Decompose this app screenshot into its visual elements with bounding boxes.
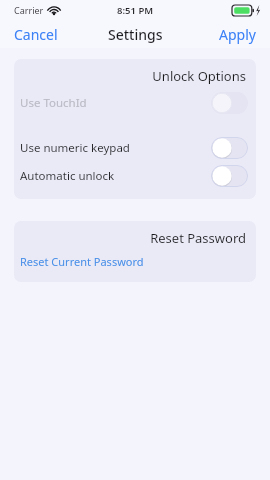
- button[interactable]: Toggle: [211, 137, 248, 159]
- staticText: Settings: [108, 25, 163, 44]
- button[interactable]: Use numeric keypad: [14, 134, 256, 162]
- staticText: Cancel: [14, 25, 58, 44]
- button[interactable]: Automatic unlock: [14, 162, 256, 190]
- staticText: Apply: [219, 25, 256, 44]
- button[interactable]: Toggle: [211, 92, 248, 114]
- button[interactable]: Use TouchId: [14, 89, 256, 117]
- staticText: Automatic unlock: [20, 168, 211, 184]
- button[interactable]: Cancel: [0, 21, 72, 48]
- staticText: Reset Current Password: [20, 254, 144, 269]
- staticText: Carrier: [14, 4, 44, 16]
- other: Battery charging: [232, 5, 262, 16]
- staticText: Use numeric keypad: [20, 140, 211, 156]
- staticText: Use TouchId: [20, 95, 211, 111]
- staticText: Unlock Options: [14, 67, 246, 85]
- staticText: Reset Password: [14, 229, 246, 247]
- button[interactable]: Toggle: [211, 165, 248, 187]
- button[interactable]: Apply: [205, 21, 270, 48]
- staticText: 8:51 PM: [117, 4, 154, 17]
- button[interactable]: Reset Current Password: [14, 251, 256, 282]
